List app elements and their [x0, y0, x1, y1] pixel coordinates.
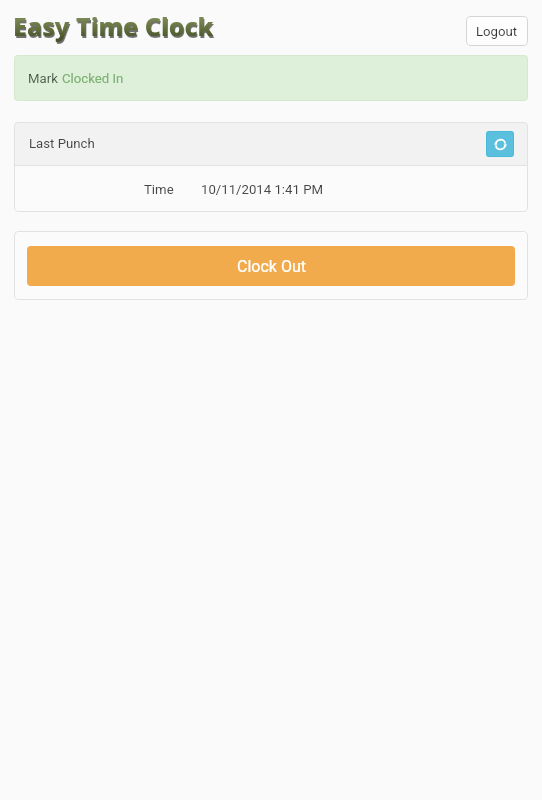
staticText: Logout: [476, 24, 518, 39]
staticText: Time: [144, 182, 174, 197]
staticText: Last Punch: [29, 136, 95, 151]
staticText: 10/11/2014 1:41 PM: [201, 182, 323, 197]
staticText: Easy Time Clock: [14, 11, 215, 45]
button[interactable]: Refresh: [486, 131, 514, 157]
button[interactable]: Logout: [466, 16, 528, 46]
staticText: Clocked In: [62, 71, 124, 86]
staticText: Clock Out: [237, 257, 306, 276]
staticText: Easy Time Clock: [13, 9, 214, 43]
staticText: Mark: [28, 71, 62, 86]
button[interactable]: Clock Out: [27, 246, 515, 286]
